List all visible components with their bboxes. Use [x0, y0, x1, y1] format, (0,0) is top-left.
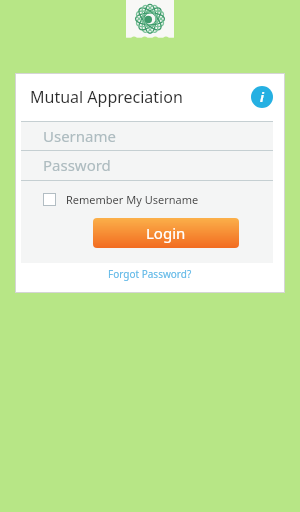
staticText: Login [146, 223, 186, 243]
button[interactable]: Password [21, 151, 273, 179]
staticText: i [260, 88, 264, 106]
staticText: Username [43, 126, 116, 146]
button[interactable]: Remember My Username [43, 189, 199, 209]
button[interactable]: Information [251, 86, 273, 108]
staticText: Remember My Username [66, 192, 199, 207]
button[interactable]: Forgot Password? [108, 267, 192, 281]
staticText: Mutual Appreciation [30, 86, 183, 108]
staticText: Password [43, 155, 111, 175]
button[interactable]: Login [93, 218, 239, 248]
button[interactable]: Username [21, 122, 273, 150]
